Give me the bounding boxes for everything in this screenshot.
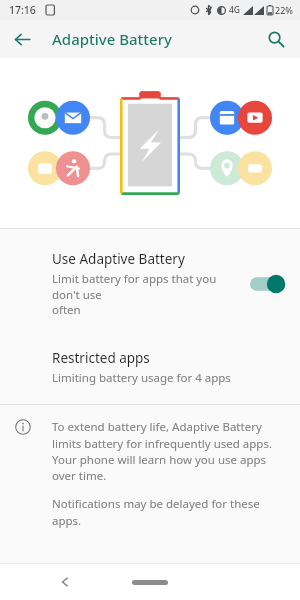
staticText: To extend battery life, Adaptive Battery… [52, 419, 276, 483]
button[interactable]: Search [260, 23, 292, 55]
button[interactable]: Use Adaptive Battery [0, 238, 300, 329]
staticText: Limit battery for apps that you don't us… [52, 271, 240, 317]
staticText: 4G [229, 4, 241, 16]
button[interactable]: Restricted apps [0, 343, 300, 398]
button[interactable]: Home [132, 580, 168, 585]
button[interactable]: Use Adaptive Battery toggle [248, 273, 286, 295]
staticText: 17:16 [9, 3, 36, 17]
button[interactable]: Back [50, 567, 80, 597]
staticText: Use Adaptive Battery [52, 250, 185, 268]
staticText: Adaptive Battery [52, 29, 172, 49]
staticText: Notifications may be delayed for these a… [52, 496, 276, 528]
staticText: Limiting battery usage for 4 apps [52, 370, 231, 386]
button[interactable]: Back [6, 23, 38, 55]
staticText: Restricted apps [52, 349, 150, 367]
staticText: 22% [275, 4, 293, 16]
